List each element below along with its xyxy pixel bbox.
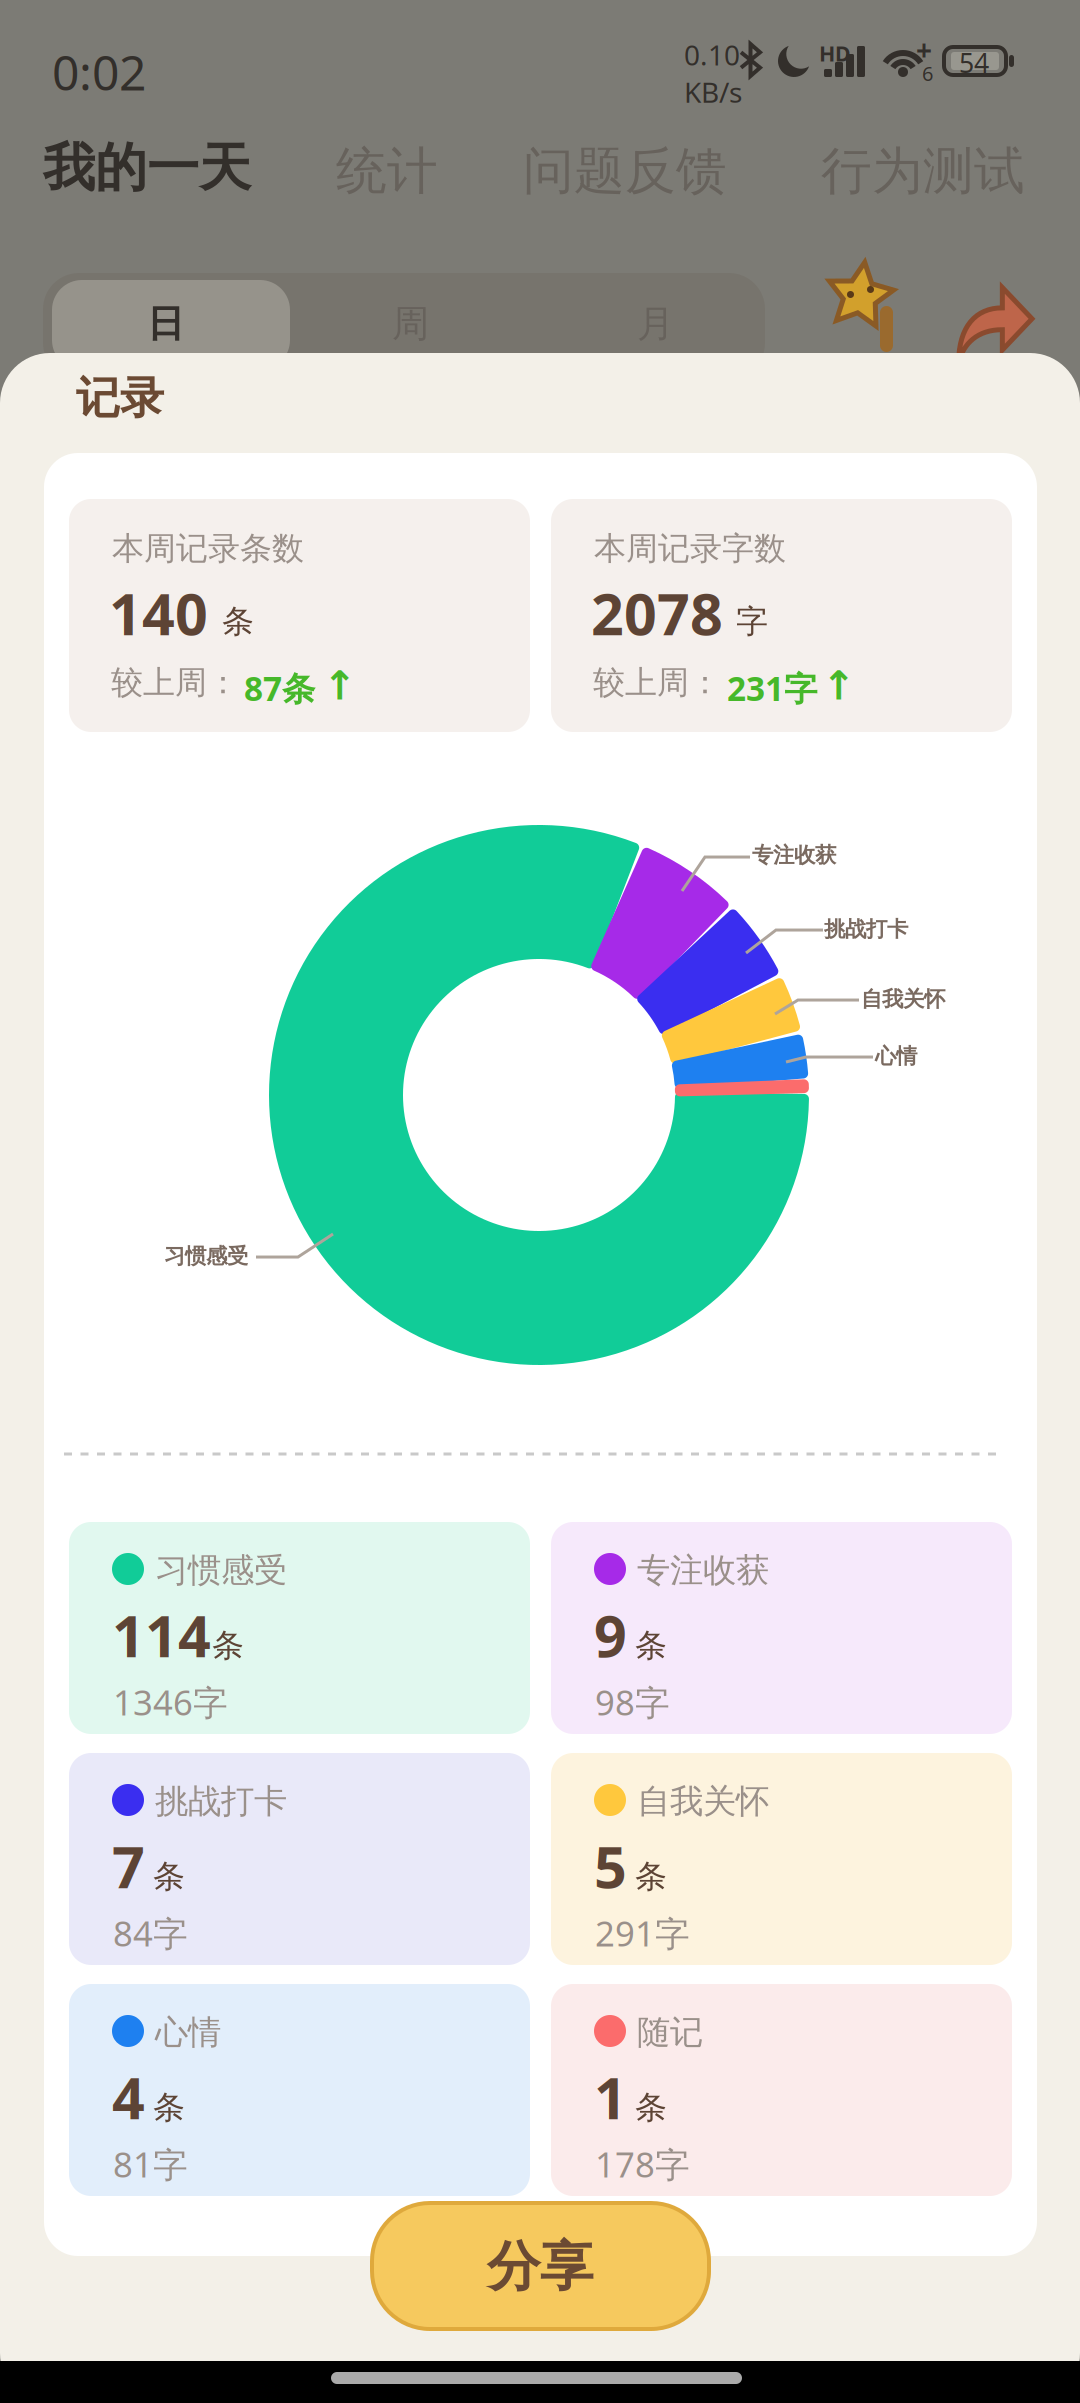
staticText: 条 xyxy=(212,1626,244,1665)
button[interactable]: AI 总结 xyxy=(824,262,924,362)
staticText: 挑战打卡 xyxy=(155,1781,287,1822)
staticText: 114 xyxy=(112,1597,211,1673)
staticText: 4 xyxy=(112,2059,145,2135)
staticText: 随记 xyxy=(637,2012,703,2053)
staticText: 习惯感受 xyxy=(155,1550,287,1591)
staticText: 字 xyxy=(736,602,768,641)
button[interactable]: 行为测试 xyxy=(0,0,1052,218)
staticText: 自我关怀 xyxy=(637,1781,769,1822)
staticText: 行为测试 xyxy=(821,140,1025,202)
staticText: 7 xyxy=(112,1828,145,1904)
staticText: 2078 xyxy=(591,575,723,651)
button[interactable]: 我的一天 xyxy=(0,0,290,213)
staticText: 条 xyxy=(222,602,254,641)
staticText: 较上周： xyxy=(593,663,721,702)
staticText: + xyxy=(916,31,932,68)
staticText: 习惯感受 xyxy=(164,1243,248,1269)
staticText: 专注收获 xyxy=(637,1550,769,1591)
staticText: 1346字 xyxy=(113,1679,228,1725)
staticText: 本周记录字数 xyxy=(594,529,786,568)
staticText: 1 xyxy=(594,2059,627,2135)
staticText: 条 xyxy=(153,1857,185,1896)
staticText: 0.10 KB/s xyxy=(684,36,742,110)
staticText: 挑战打卡 xyxy=(824,916,908,942)
staticText: 专注收获 xyxy=(752,842,836,868)
staticText: 98字 xyxy=(595,1679,670,1725)
staticText: 5 xyxy=(594,1828,627,1904)
staticText: 0:02 xyxy=(52,40,146,104)
staticText: 条 xyxy=(153,2088,185,2127)
staticText: 231字 xyxy=(727,666,817,710)
staticText: ↑ xyxy=(323,663,357,708)
staticText: 54 xyxy=(959,45,989,80)
staticText: 月 xyxy=(637,301,674,347)
staticText: 周 xyxy=(392,301,429,347)
staticText: 81字 xyxy=(113,2141,188,2187)
staticText: 问题反馈 xyxy=(523,140,727,202)
staticText: 记录 xyxy=(76,371,164,425)
staticText: 我的一天 xyxy=(43,136,251,200)
staticText: 9 xyxy=(594,1597,627,1673)
staticText: HD xyxy=(819,39,851,67)
button[interactable]: 分享 xyxy=(372,2203,709,2329)
staticText: 84字 xyxy=(113,1910,188,1956)
staticText: 条 xyxy=(635,2088,667,2127)
button[interactable]: 分享 xyxy=(952,282,1052,362)
staticText: 心情 xyxy=(155,2012,221,2053)
staticText: 291字 xyxy=(595,1910,690,1956)
staticText: 心情 xyxy=(875,1043,917,1069)
staticText: 6 xyxy=(922,60,933,87)
staticText: ↑ xyxy=(822,663,856,708)
staticText: 分享 xyxy=(487,2234,593,2299)
staticText: 条 xyxy=(635,1857,667,1896)
staticText: 条 xyxy=(635,1626,667,1665)
button[interactable]: 统计 xyxy=(0,0,457,218)
staticText: 本周记录条数 xyxy=(112,529,304,568)
staticText: 自我关怀 xyxy=(861,986,945,1012)
button[interactable]: 问题反馈 xyxy=(0,0,754,218)
staticText: 统计 xyxy=(336,140,438,202)
staticText: 日 xyxy=(147,301,184,347)
staticText: 较上周： xyxy=(111,663,239,702)
staticText: 178字 xyxy=(595,2141,690,2187)
staticText: 140 xyxy=(109,575,208,651)
staticText: 87条 xyxy=(244,666,315,710)
